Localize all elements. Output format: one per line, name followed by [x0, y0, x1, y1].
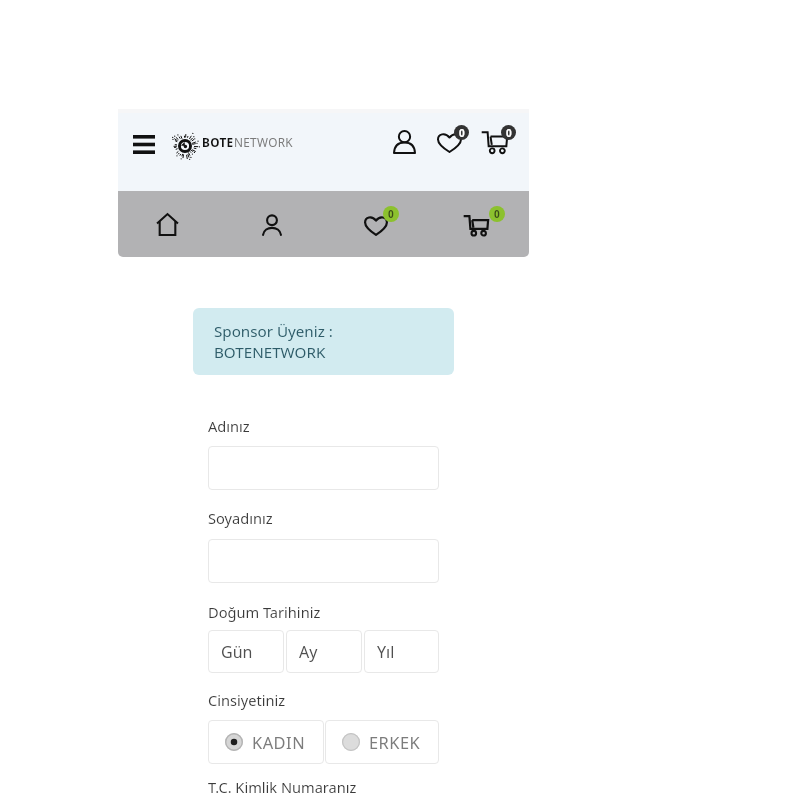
staticText: BOTENETWORK [214, 342, 326, 363]
staticText: Soyadınız [208, 508, 273, 528]
button[interactable]: KADIN [208, 720, 324, 764]
button[interactable]: Cart [460, 197, 508, 251]
staticText: Yıl [377, 641, 395, 663]
button[interactable]: Menu [129, 131, 159, 158]
staticText: ERKEK [369, 731, 421, 753]
button[interactable]: Favorites [433, 121, 471, 156]
staticText: 0 [506, 126, 512, 140]
button[interactable]: Account [388, 126, 421, 159]
staticText: 0 [494, 207, 500, 221]
staticText: KADIN [252, 731, 306, 753]
button[interactable]: ERKEK [325, 720, 439, 764]
button[interactable]: Favorites [358, 197, 406, 251]
button[interactable]: Gün [208, 630, 284, 673]
button[interactable] [208, 446, 439, 490]
staticText: Sponsor Üyeniz : [214, 321, 333, 342]
button[interactable]: Account [251, 204, 293, 246]
staticText: 0 [459, 126, 465, 140]
staticText: Doğum Tarihiniz [208, 602, 321, 622]
button[interactable]: Ay [286, 630, 362, 673]
staticText: Cinsiyetiniz [208, 690, 286, 710]
staticText: BOTE [202, 134, 234, 150]
button[interactable]: Cart [478, 121, 516, 157]
button[interactable]: Home [147, 203, 188, 245]
button[interactable]: Yıl [364, 630, 439, 673]
button[interactable]: Sponsor Üyeniz : [193, 308, 454, 375]
staticText: 0 [388, 207, 394, 221]
staticText: Adınız [208, 416, 250, 436]
staticText: Gün [221, 641, 253, 663]
button[interactable] [208, 539, 439, 583]
staticText: T.C. Kimlik Numaranız [208, 777, 357, 797]
staticText: NETWORK [234, 134, 293, 150]
button[interactable]: BOTENETWORK home [170, 129, 291, 163]
staticText: Ay [299, 641, 318, 663]
